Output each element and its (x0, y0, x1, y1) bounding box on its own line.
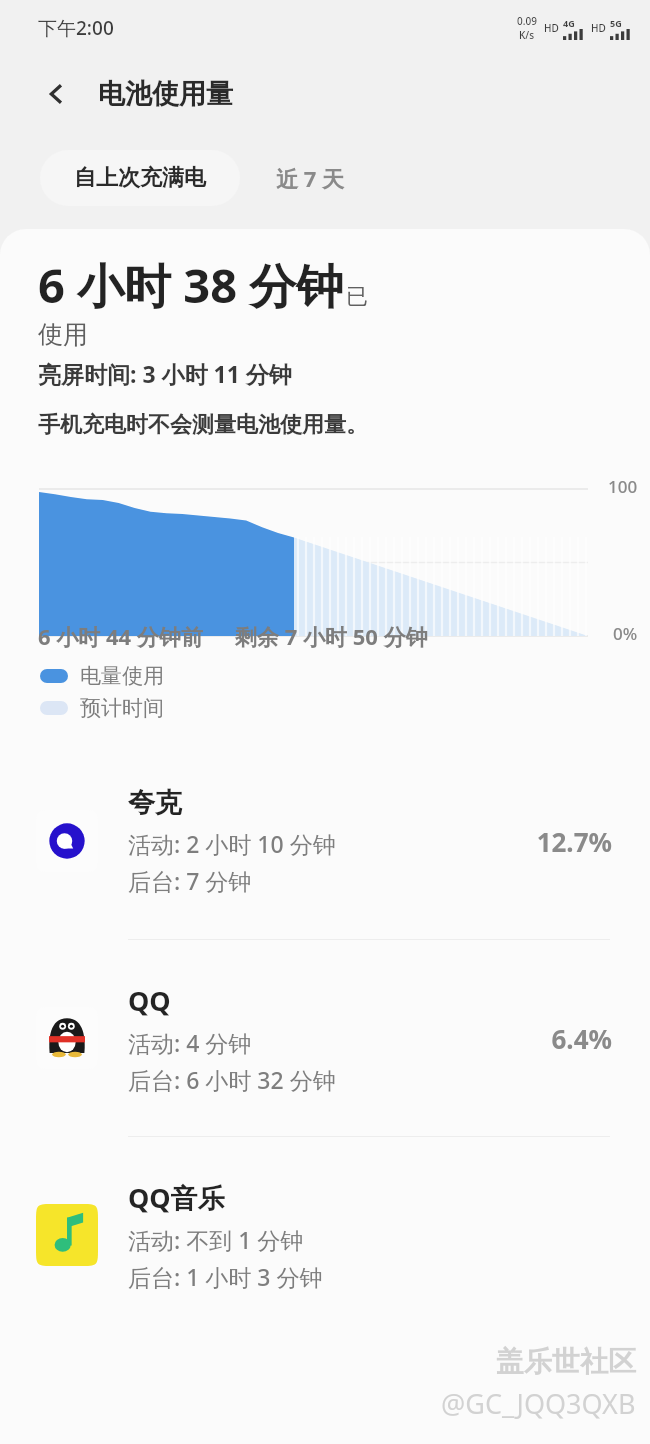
staticText: QQ (128, 982, 171, 1019)
button[interactable]: QQ音乐 (0, 1137, 650, 1333)
staticText: 100 (608, 475, 638, 498)
staticText: 夸克 (128, 786, 182, 820)
staticText: 活动: 4 分钟 (128, 1027, 252, 1058)
staticText: K/s (519, 28, 535, 42)
staticText: 电池使用量 (98, 77, 233, 111)
staticText: 6.4% (551, 1021, 612, 1056)
staticText: 剩余 7 小时 50 分钟 (235, 621, 428, 651)
staticText: 下午2:00 (38, 15, 114, 41)
staticText: 使用 (38, 319, 88, 350)
staticText: 电量使用 (80, 663, 164, 689)
staticText: QQ音乐 (128, 1179, 225, 1216)
staticText: 近 7 天 (276, 163, 345, 193)
staticText: 盖乐世社区 (496, 1344, 636, 1379)
staticText: @GC_JQQ3QXB (441, 1385, 636, 1422)
staticText: 预计时间 (80, 695, 164, 721)
staticText: 6 小时 44 分钟前 (38, 621, 203, 651)
staticText: 亮屏时间: 3 小时 11 分钟 (38, 358, 292, 389)
staticText: 活动: 2 小时 10 分钟 (128, 828, 336, 859)
staticText: 12.7% (536, 824, 612, 859)
staticText: 自上次充满电 (74, 164, 206, 192)
button[interactable]: Back (34, 71, 80, 117)
staticText: 后台: 1 小时 3 分钟 (128, 1261, 323, 1292)
button[interactable]: 夸克 (0, 743, 650, 939)
button[interactable]: QQ (0, 940, 650, 1136)
staticText: 已 (346, 283, 368, 311)
staticText: HD (591, 21, 606, 35)
button[interactable]: 近 7 天 (240, 150, 381, 206)
staticText: 6 小时 38 分钟 (38, 253, 344, 317)
staticText: 5G (610, 17, 622, 29)
button[interactable]: 自上次充满电 (40, 150, 240, 206)
staticText: HD (544, 21, 559, 35)
staticText: 活动: 不到 1 分钟 (128, 1224, 304, 1255)
staticText: 0% (613, 622, 638, 645)
staticText: 后台: 6 小时 32 分钟 (128, 1064, 336, 1095)
staticText: 0.09 (517, 14, 537, 28)
staticText: 后台: 7 分钟 (128, 865, 252, 896)
staticText: 手机充电时不会测量电池使用量。 (38, 411, 368, 439)
staticText: 4G (563, 17, 575, 29)
